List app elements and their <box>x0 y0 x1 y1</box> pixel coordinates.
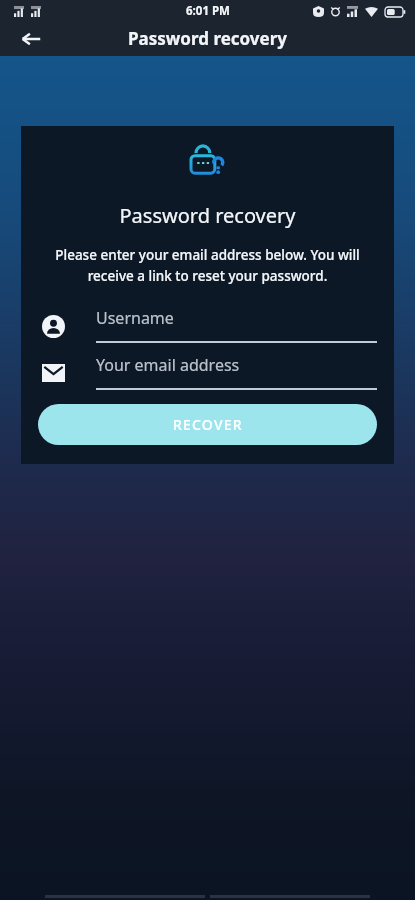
button[interactable]: Your email address <box>38 354 377 390</box>
button[interactable]: Back <box>16 24 46 54</box>
staticText: 6:01 PM <box>186 3 230 19</box>
staticText: RECOVER <box>173 415 243 434</box>
button[interactable]: Username <box>38 307 377 343</box>
staticText: Password recovery <box>128 27 288 50</box>
staticText: Please enter your email address below. Y… <box>36 246 379 285</box>
staticText: Your email address <box>96 354 240 376</box>
staticText: Password recovery <box>21 202 394 229</box>
button[interactable]: RECOVER <box>38 404 377 445</box>
staticText: Username <box>96 307 174 329</box>
